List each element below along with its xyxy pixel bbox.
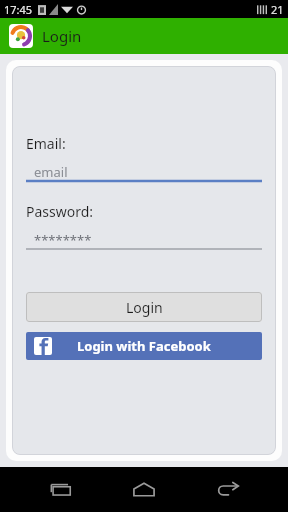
button[interactable]: ******** [26,231,262,252]
button[interactable]: email [26,163,262,184]
button[interactable]: App logo [9,24,33,48]
staticText: email [34,163,68,181]
staticText: Login [42,26,82,46]
button[interactable]: Back [205,467,251,512]
button[interactable]: Login with Facebook [26,332,262,360]
staticText: Login with Facebook [77,337,211,355]
button[interactable]: Home [121,467,167,512]
staticText: Password: [26,202,94,221]
staticText: ******** [34,231,92,249]
staticText: 21 [271,2,284,17]
staticText: 17:45 [4,2,33,17]
button[interactable]: Recent apps [38,467,84,512]
staticText: Email: [26,134,66,153]
staticText: Login [126,298,163,317]
button[interactable]: Login [26,292,262,322]
